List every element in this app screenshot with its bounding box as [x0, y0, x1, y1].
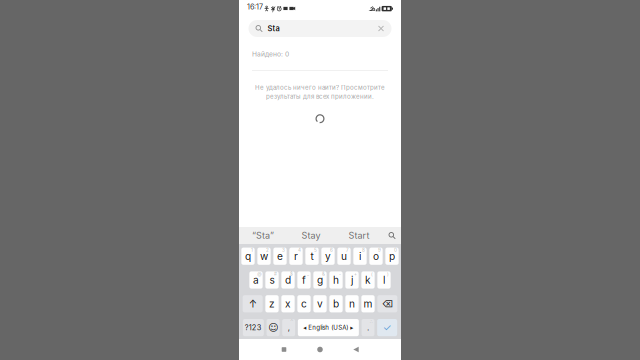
staticText: j [351, 274, 353, 286]
staticText: 5 [314, 247, 317, 253]
button[interactable]: j [345, 271, 359, 289]
button[interactable]: y [321, 248, 335, 265]
button[interactable]: z [265, 295, 279, 312]
button[interactable]: Search [383, 227, 401, 244]
staticText: @ [257, 271, 261, 277]
button[interactable]: n [345, 295, 359, 312]
button[interactable]: p [385, 248, 399, 265]
staticText: ↑ [249, 298, 257, 310]
staticText: Stay [301, 230, 320, 241]
button[interactable]: e [273, 248, 287, 265]
staticText: ( [371, 271, 373, 277]
button[interactable]: ↑ [243, 295, 263, 312]
staticText: 2 [266, 247, 269, 253]
button[interactable]: Start [335, 227, 383, 244]
staticText: w [260, 250, 268, 262]
button[interactable]: o [369, 248, 383, 265]
button[interactable]: q [241, 248, 255, 265]
staticText: s [269, 274, 274, 286]
button[interactable]: v [313, 295, 327, 312]
button[interactable]: u [337, 248, 351, 265]
staticText: g [317, 274, 323, 286]
staticText: - [339, 271, 341, 277]
staticText: t [310, 250, 313, 262]
staticText: v [317, 298, 323, 310]
staticText: ∴ [370, 319, 373, 324]
button[interactable]: Home [302, 339, 338, 360]
staticText: _ [307, 271, 309, 277]
staticText: i [359, 250, 361, 262]
staticText: h [333, 274, 339, 286]
button[interactable]: m [361, 295, 375, 312]
staticText: , [288, 323, 290, 332]
button[interactable]: . [362, 319, 374, 336]
staticText: k [365, 274, 371, 286]
button[interactable]: Back [338, 339, 374, 360]
button[interactable]: ◂ English (USA) ▸ [298, 319, 359, 336]
button[interactable]: b [329, 295, 343, 312]
staticText: q [245, 250, 251, 262]
staticText: e [277, 250, 283, 262]
button[interactable]: Recents [266, 339, 302, 360]
button[interactable]: c [297, 295, 311, 312]
button[interactable]: “Sta” [239, 227, 287, 244]
staticText: b [333, 298, 339, 310]
staticText: ⌫ [382, 298, 393, 309]
staticText: f [302, 274, 306, 286]
button[interactable]: h [329, 271, 343, 289]
button[interactable]: f [297, 271, 311, 289]
staticText: u [341, 250, 347, 262]
staticText: “Sta” [252, 230, 274, 241]
staticText: a [253, 274, 259, 286]
button[interactable]: , [282, 319, 295, 336]
button[interactable]: k [361, 271, 375, 289]
staticText: ✓ [383, 322, 392, 334]
staticText: 8 [362, 247, 365, 253]
staticText: z [269, 298, 275, 310]
staticText: 16:17 [247, 3, 263, 11]
staticText: $ [290, 271, 293, 277]
staticText: & [322, 271, 325, 277]
staticText: Найдено: 0 [252, 50, 289, 58]
button[interactable]: x [281, 295, 295, 312]
staticText: 3 [282, 247, 285, 253]
staticText: n [349, 298, 355, 310]
staticText: + [354, 271, 357, 277]
staticText: p [389, 250, 395, 262]
staticText: m [363, 298, 372, 310]
staticText: ⌃ [290, 319, 294, 324]
button[interactable]: t [305, 248, 319, 265]
staticText: ☺ [268, 322, 278, 333]
button[interactable]: i [353, 248, 367, 265]
staticText: r [294, 250, 298, 262]
staticText: Start [348, 230, 369, 241]
button[interactable]: d [281, 271, 295, 289]
staticText: результаты для всех приложений. [266, 93, 374, 100]
staticText: 7 [346, 247, 349, 253]
staticText: ?123 [245, 323, 262, 332]
staticText: c [301, 298, 307, 310]
staticText: Sta [267, 24, 279, 33]
button[interactable]: s [265, 271, 279, 289]
staticText: l [383, 274, 385, 286]
button[interactable]: ?123 [243, 319, 264, 336]
button[interactable]: ✓ [377, 319, 397, 336]
button[interactable]: Stay [287, 227, 335, 244]
button[interactable]: g [313, 271, 327, 289]
button[interactable]: a [249, 271, 263, 289]
staticText: 1 [251, 247, 253, 253]
button[interactable]: r [289, 248, 303, 265]
staticText: ◂ English (USA) ▸ [303, 324, 353, 331]
staticText: Не удалось ничего найти? Просмотрите [255, 84, 385, 91]
staticText: 0 [394, 247, 397, 253]
button[interactable]: l [377, 271, 391, 289]
staticText: ) [387, 271, 389, 277]
button[interactable]: w [257, 248, 271, 265]
staticText: d [285, 274, 291, 286]
staticText: . [367, 323, 369, 332]
staticText: 9 [378, 247, 381, 253]
button[interactable]: ⌫ [377, 295, 397, 312]
staticText: x [285, 298, 291, 310]
button[interactable]: Sta [248, 20, 391, 37]
button[interactable]: ☺ [267, 319, 280, 336]
